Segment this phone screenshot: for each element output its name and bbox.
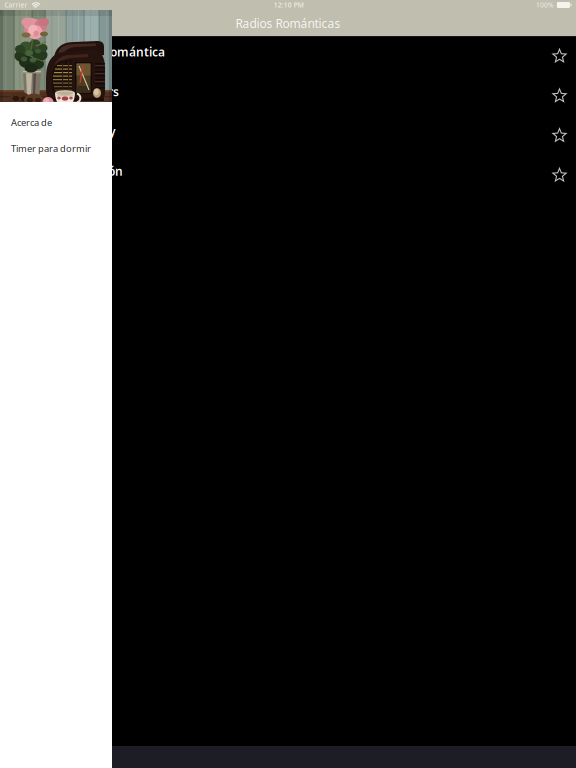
staticText: 100% bbox=[536, 1, 554, 9]
staticText: Estación Radio Romántica bbox=[14, 44, 165, 60]
button[interactable]: Clásico de Corazón bbox=[0, 156, 576, 195]
button[interactable]: Estación Radio Romántica bbox=[0, 36, 576, 76]
button[interactable]: Timer para dormir bbox=[0, 135, 112, 161]
staticText: Timer para dormir bbox=[11, 142, 91, 155]
button[interactable]: Acerca de bbox=[0, 109, 112, 135]
staticText: Baladas del Pop y bbox=[14, 123, 116, 139]
staticText: 12:10 PM bbox=[274, 1, 304, 9]
staticText: Boleros del Amors bbox=[14, 84, 119, 100]
staticText: Radios Románticas bbox=[235, 15, 340, 31]
button[interactable]: Baladas del Pop y bbox=[0, 116, 576, 156]
staticText: Acerca de bbox=[11, 116, 52, 129]
staticText: Carrier bbox=[4, 1, 27, 9]
staticText: Clásico de Corazón bbox=[14, 163, 123, 179]
button[interactable]: Boleros del Amors bbox=[0, 76, 576, 116]
